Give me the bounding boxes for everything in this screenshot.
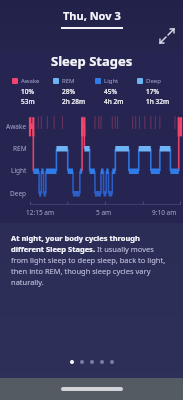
staticText: REM xyxy=(13,144,27,153)
button[interactable]: Sleep stage chart xyxy=(30,115,181,205)
staticText: 1h 32m xyxy=(146,97,170,106)
staticText: At night, your body cycles through diffe… xyxy=(11,233,172,287)
staticText: Thu, Nov 3 xyxy=(63,8,121,23)
staticText: 53m xyxy=(21,97,35,106)
button[interactable]: Page 4 xyxy=(100,360,104,364)
staticText: Light xyxy=(11,166,27,175)
staticText: Sleep Stages xyxy=(51,52,133,70)
button[interactable]: Page 1 xyxy=(70,360,74,364)
button[interactable]: Page 5 xyxy=(110,360,114,364)
button[interactable]: Page 2 xyxy=(80,360,84,364)
staticText: Deep xyxy=(10,189,27,198)
button[interactable]: Collapse xyxy=(157,26,177,46)
staticText: 2h 28m xyxy=(62,97,86,106)
staticText: 5 am xyxy=(96,208,112,217)
staticText: 12:15 am xyxy=(26,208,55,217)
staticText: 4h 2m xyxy=(104,97,124,106)
staticText: 17% xyxy=(146,87,159,96)
staticText: REM xyxy=(62,77,75,85)
button[interactable]: Home xyxy=(61,387,123,391)
staticText: Awake xyxy=(6,122,27,131)
staticText: Deep xyxy=(146,77,161,85)
staticText: 45% xyxy=(104,87,117,96)
button[interactable]: Page 3 xyxy=(90,360,94,364)
staticText: 10% xyxy=(21,87,34,96)
staticText: 9:10 am xyxy=(152,208,177,217)
staticText: 28% xyxy=(62,87,75,96)
staticText: Awake xyxy=(21,77,40,85)
staticText: Light xyxy=(104,77,119,85)
